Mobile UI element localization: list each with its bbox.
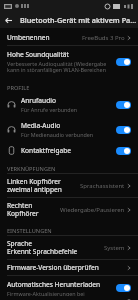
staticText: Für Anrufe verbunden [21, 106, 78, 113]
button[interactable]: Umschalten [116, 58, 131, 66]
button[interactable]: Automatisches Herunterladen über WLAN [0, 276, 138, 300]
button[interactable]: Media-Audio [0, 117, 138, 142]
button[interactable]: Linken Kopfhörer zweimal antippen [0, 174, 138, 197]
button[interactable]: Umschalten [116, 284, 131, 292]
staticText: Wiedergabe/Pausieren [60, 206, 125, 214]
staticText: Automatisches Herunterladen über WLAN [7, 280, 112, 289]
staticText: Für Medienaudio verbunden [21, 131, 94, 138]
button[interactable]: Sprache Erkennt Sprachbefehle [0, 236, 138, 259]
staticText: VERKNÜPFUNGEN [7, 165, 56, 173]
button[interactable]: Zurück [0, 12, 16, 28]
button[interactable]: Kontaktfreigabe [0, 142, 138, 159]
staticText: EINSTELLUNGEN [7, 227, 52, 235]
staticText: Linken Kopfhörer zweimal antippen [7, 177, 77, 194]
staticText: Kontaktfreigabe [21, 146, 71, 155]
button[interactable]: Umschalten [116, 126, 131, 134]
button[interactable]: Anrufaudio [0, 92, 138, 117]
staticText: Anrufaudio [21, 96, 56, 105]
button[interactable]: Hohe Soundqualität [0, 46, 138, 78]
button[interactable]: Umschalten [116, 101, 131, 109]
staticText: Firmware-Aktualisierungen bei bestehende… [7, 290, 112, 296]
staticText: Bluetooth-Gerät mit aktivem Partnergerät [20, 15, 138, 25]
staticText: Rechten Kopfhörer zweimal antippen [7, 201, 57, 218]
staticText: Sprachassistent [80, 182, 125, 190]
staticText: Verbesserte Audioqualität (Wiedergabe ka… [7, 60, 112, 74]
staticText: System [104, 244, 125, 252]
staticText: Sprache Erkennt Sprachbefehle [7, 239, 101, 256]
button[interactable]: Rechten Kopfhörer zweimal antippen [0, 198, 138, 221]
button[interactable]: Umschalten [116, 147, 131, 155]
staticText: Media-Audio [21, 121, 61, 130]
button[interactable]: Firmware-Version überprüfen [0, 260, 138, 275]
staticText: FreeBuds 3 Pro [82, 34, 125, 42]
staticText: Firmware-Version überprüfen [7, 263, 127, 272]
staticText: PROFILE [7, 84, 30, 92]
staticText: Hohe Soundqualität [7, 50, 69, 59]
button[interactable]: Umbenennen [0, 30, 138, 45]
staticText: Umbenennen [7, 33, 79, 42]
